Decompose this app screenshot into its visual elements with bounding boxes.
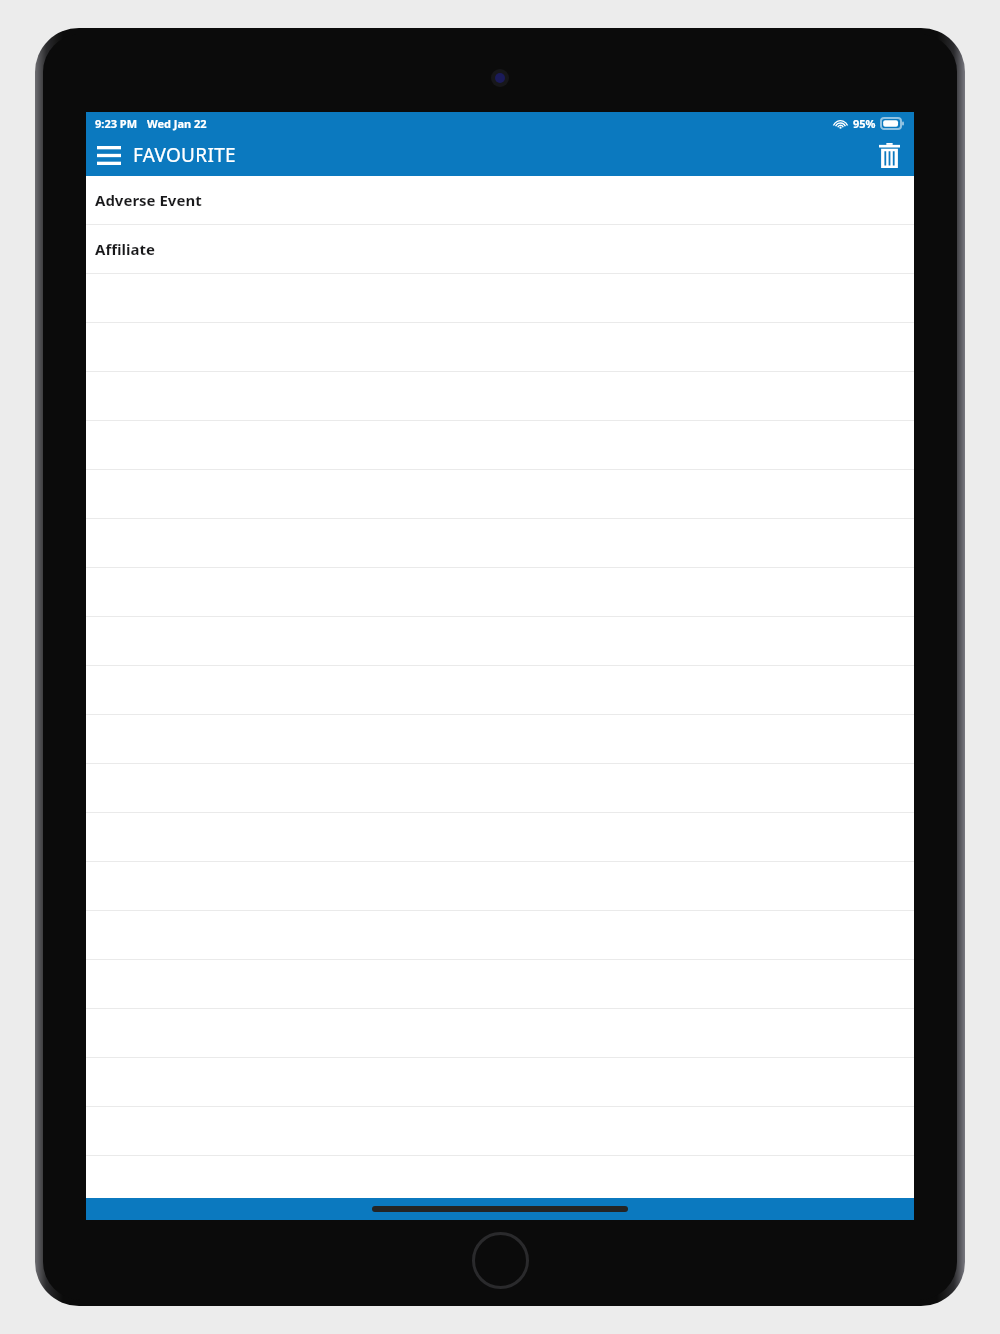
- staticText: 9:23 PM: [95, 116, 138, 131]
- button[interactable]: Open navigation menu: [86, 134, 246, 176]
- staticText: Adverse Event: [95, 190, 202, 210]
- button[interactable]: Adverse Event: [86, 176, 914, 224]
- staticText: FAVOURITE: [133, 142, 236, 168]
- staticText: 95%: [853, 116, 876, 131]
- button[interactable]: Affiliate: [86, 225, 914, 273]
- staticText: Affiliate: [95, 239, 155, 259]
- other: Open navigation menu: [97, 146, 121, 165]
- button[interactable]: Delete: [864, 134, 914, 176]
- staticText: Wed Jan 22: [147, 116, 207, 131]
